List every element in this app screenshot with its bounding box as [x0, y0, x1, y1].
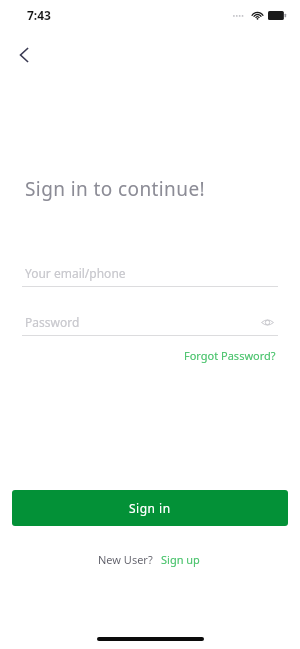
button[interactable]: Password: [22, 309, 278, 335]
staticText: Password: [25, 314, 80, 330]
button[interactable]: Sign in: [12, 490, 288, 526]
staticText: 7:43: [27, 7, 51, 23]
staticText: Sign up: [161, 552, 200, 567]
staticText: Forgot Password?: [184, 348, 276, 363]
button[interactable]: Your email/phone: [22, 260, 278, 286]
staticText: Sign in: [129, 500, 171, 516]
staticText: Your email/phone: [25, 265, 126, 281]
button[interactable]: Forgot Password?: [182, 346, 278, 365]
button[interactable]: Show password: [256, 311, 278, 333]
staticText: Sign in to continue!: [25, 176, 206, 202]
staticText: New User?: [98, 552, 153, 567]
button[interactable]: Back: [8, 38, 42, 72]
button[interactable]: Sign up: [159, 550, 202, 569]
